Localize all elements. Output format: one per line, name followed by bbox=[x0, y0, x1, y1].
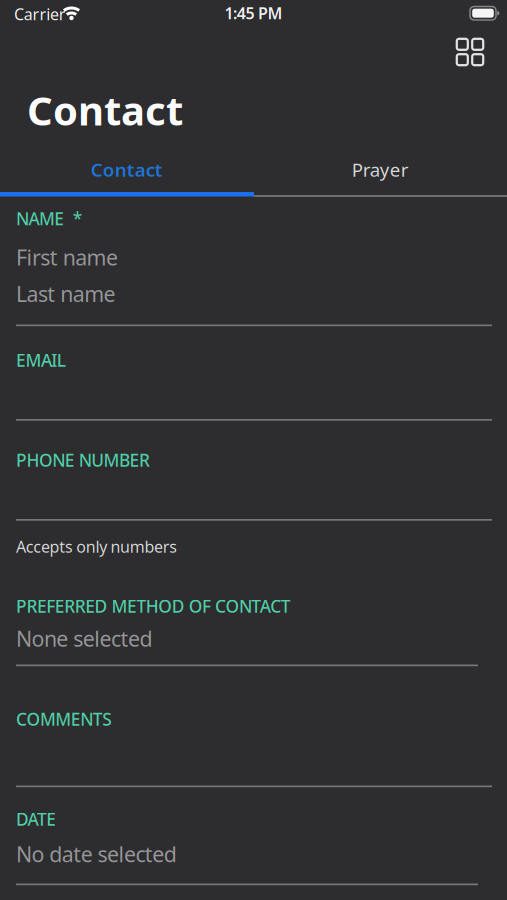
staticText: First name bbox=[16, 243, 118, 271]
staticText: No date selected bbox=[16, 840, 177, 868]
staticText: Carrier bbox=[14, 3, 66, 25]
staticText: DATE bbox=[16, 807, 56, 830]
staticText: Accepts only numbers bbox=[16, 536, 177, 557]
staticText: EMAIL bbox=[16, 348, 66, 371]
staticText: Last name bbox=[16, 279, 116, 308]
staticText: 1:45 PM bbox=[224, 2, 283, 24]
staticText: Contact bbox=[27, 83, 183, 137]
button[interactable]: Prayer bbox=[253, 147, 507, 192]
button[interactable]: No date selected bbox=[16, 837, 478, 871]
staticText: NAME * bbox=[16, 207, 82, 230]
button[interactable]: Menu bbox=[448, 30, 492, 74]
staticText: COMMENTS bbox=[16, 707, 112, 730]
staticText: PHONE NUMBER bbox=[16, 448, 150, 471]
staticText: Prayer bbox=[352, 157, 409, 182]
button[interactable]: None selected bbox=[16, 621, 478, 655]
button[interactable]: Contact bbox=[0, 147, 253, 192]
staticText: None selected bbox=[16, 624, 152, 653]
staticText: Contact bbox=[91, 157, 163, 182]
staticText: PREFERRED METHOD OF CONTACT bbox=[16, 594, 291, 617]
